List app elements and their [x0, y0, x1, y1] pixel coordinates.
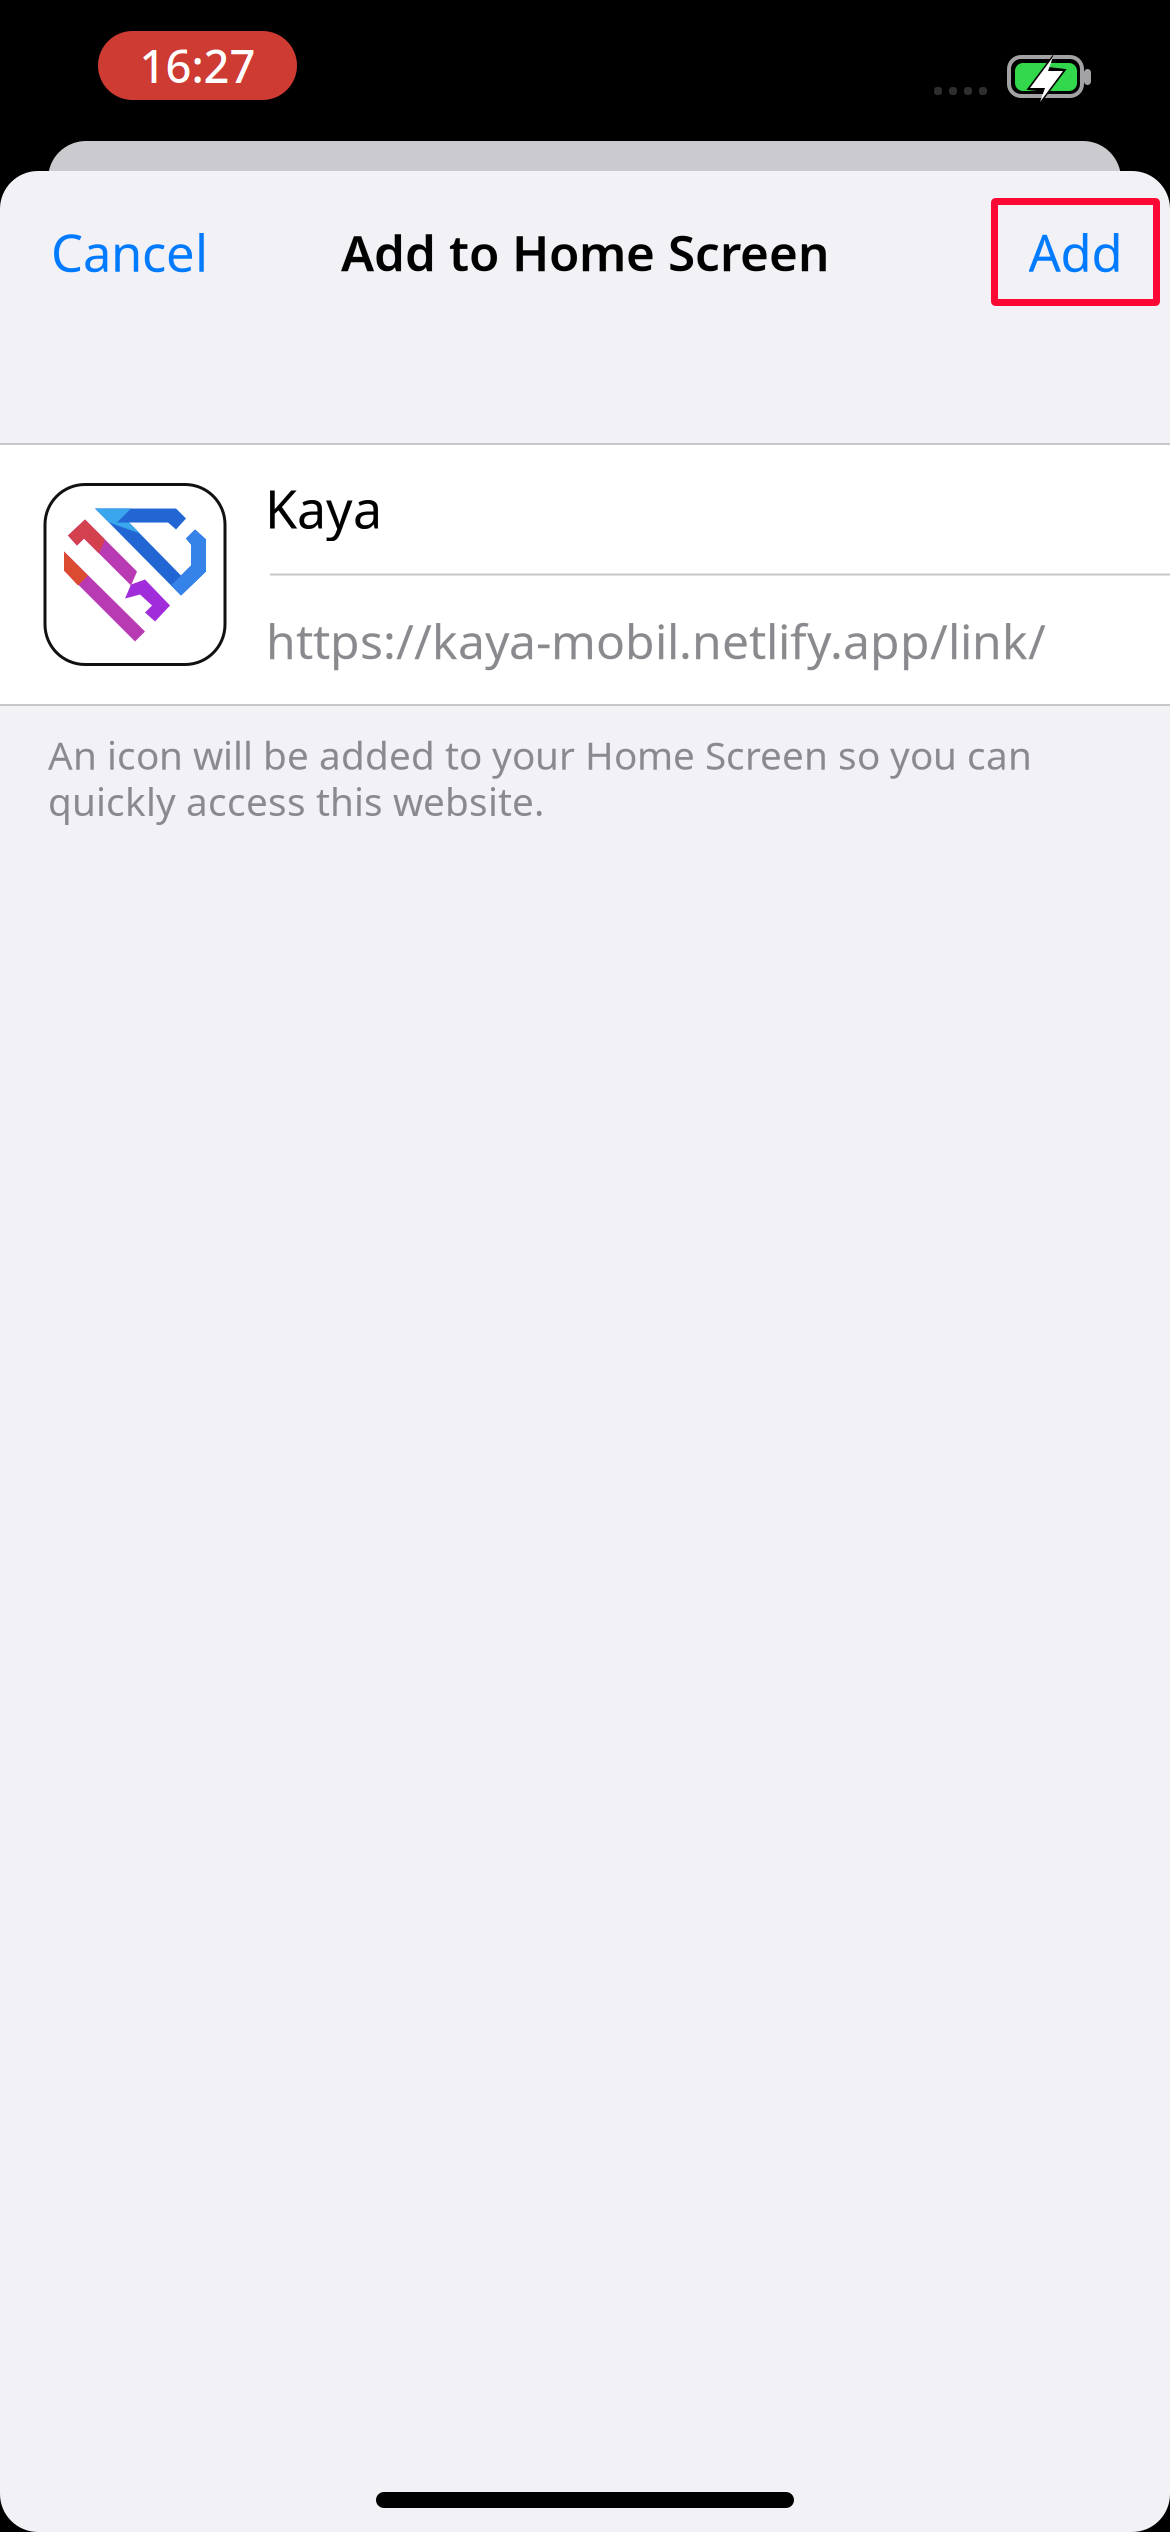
- staticText: Add to Home Screen: [341, 219, 829, 285]
- staticText: 16:27: [139, 35, 255, 96]
- staticText: https://kaya-mobil.netlify.app/link/: [266, 609, 1046, 673]
- staticText: An icon will be added to your Home Scree…: [48, 729, 1032, 780]
- staticText: quickly access this website.: [48, 775, 544, 827]
- button[interactable]: Cancel: [30, 190, 229, 314]
- staticText: Kaya: [265, 474, 382, 543]
- button[interactable]: Add: [998, 205, 1158, 299]
- staticText: Cancel: [51, 218, 208, 286]
- staticText: Add: [1028, 218, 1122, 286]
